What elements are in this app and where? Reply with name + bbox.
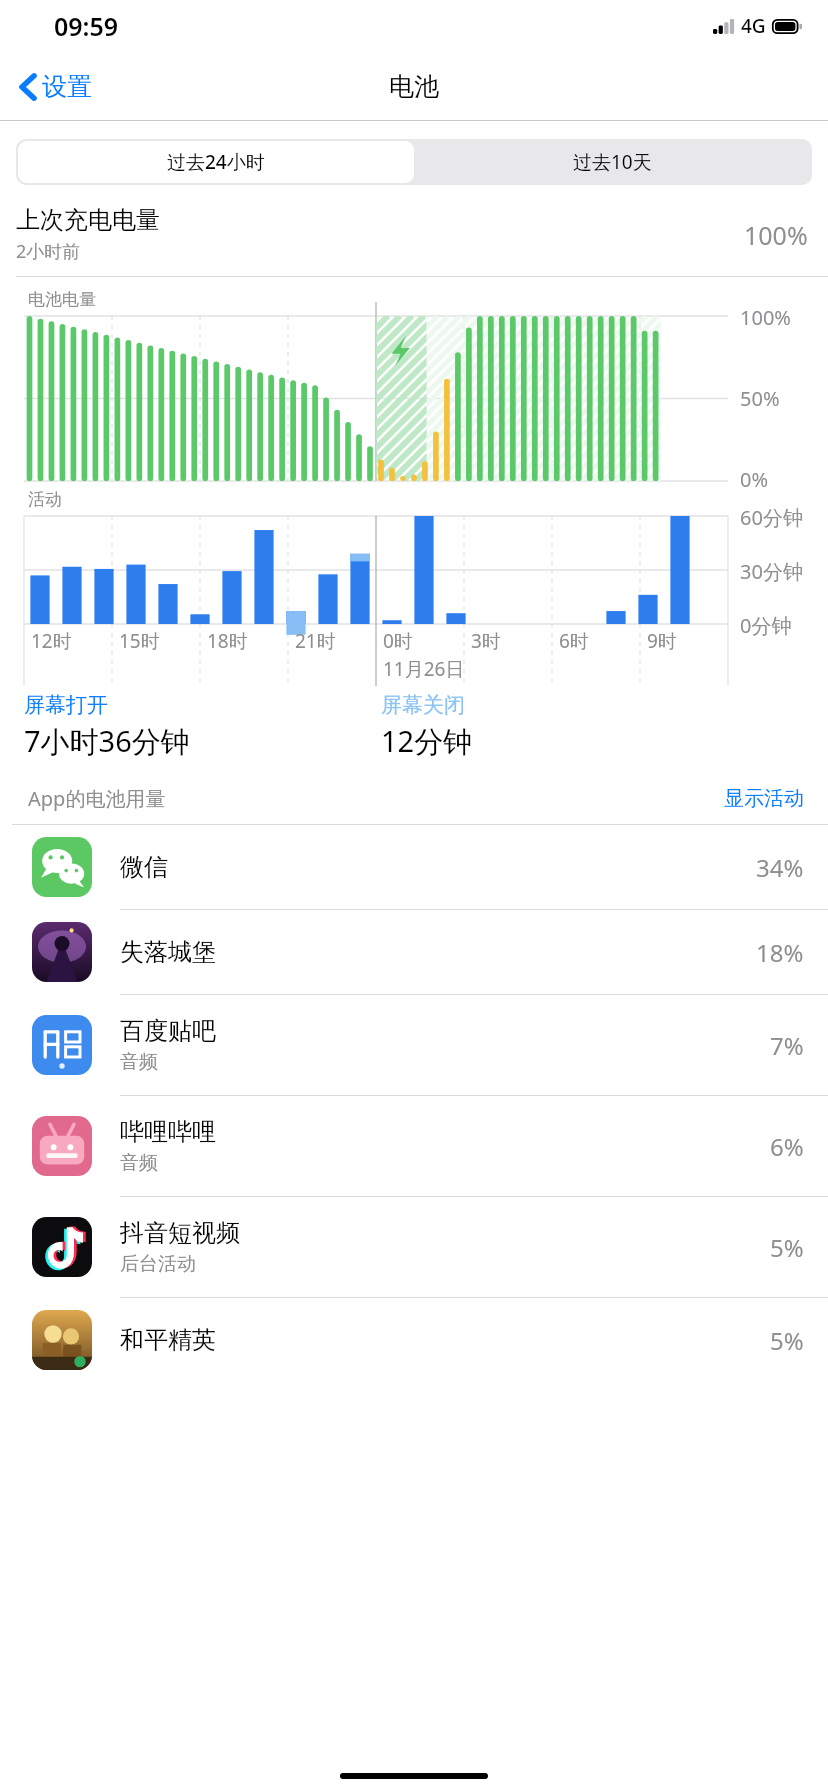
staticText: 活动 bbox=[28, 489, 62, 510]
staticText: 屏幕打开 bbox=[24, 692, 108, 718]
staticText: 0时 bbox=[383, 628, 413, 654]
button[interactable]: 和平精英 bbox=[0, 1298, 828, 1382]
staticText: 2小时前 bbox=[16, 239, 81, 264]
staticText: 5% bbox=[770, 1231, 804, 1264]
button[interactable]: 抖音短视频 bbox=[0, 1197, 828, 1297]
button[interactable]: Back bbox=[0, 61, 108, 112]
staticText: 09:59 bbox=[54, 9, 119, 43]
staticText: 9时 bbox=[647, 628, 677, 654]
staticText: 电池 bbox=[389, 71, 439, 102]
staticText: 100% bbox=[744, 218, 808, 252]
staticText: 0% bbox=[740, 466, 769, 493]
staticText: 12分钟 bbox=[381, 721, 473, 761]
staticText: 5% bbox=[770, 1324, 804, 1357]
staticText: 哔哩哔哩 bbox=[120, 1117, 216, 1147]
other: Back bbox=[20, 73, 36, 101]
staticText: 3时 bbox=[471, 628, 501, 654]
staticText: 微信 bbox=[120, 852, 168, 882]
staticText: 7小时36分钟 bbox=[24, 721, 190, 761]
staticText: 6时 bbox=[559, 628, 589, 654]
staticText: 60分钟 bbox=[740, 504, 803, 531]
button[interactable]: 过去24小时 bbox=[18, 141, 414, 183]
staticText: 显示活动 bbox=[724, 786, 804, 811]
staticText: 18% bbox=[756, 936, 804, 969]
staticText: 12时 bbox=[31, 628, 72, 654]
staticText: App的电池用量 bbox=[28, 785, 724, 812]
staticText: 30分钟 bbox=[740, 558, 803, 585]
staticText: 过去10天 bbox=[573, 149, 652, 175]
button[interactable]: 哔哩哔哩 bbox=[0, 1096, 828, 1196]
staticText: 0分钟 bbox=[740, 612, 792, 639]
button[interactable]: 失落城堡 bbox=[0, 910, 828, 994]
staticText: 电池电量 bbox=[28, 289, 96, 310]
staticText: 6% bbox=[770, 1130, 804, 1163]
staticText: 21时 bbox=[295, 628, 336, 654]
staticText: 设置 bbox=[42, 71, 92, 102]
staticText: 后台活动 bbox=[120, 1252, 196, 1276]
staticText: 百度贴吧 bbox=[120, 1016, 216, 1046]
staticText: 7% bbox=[770, 1029, 804, 1062]
staticText: 15时 bbox=[119, 628, 160, 654]
staticText: 50% bbox=[740, 385, 780, 412]
button[interactable]: 显示活动 bbox=[724, 786, 804, 811]
staticText: 上次充电电量 bbox=[16, 205, 160, 235]
staticText: 音频 bbox=[120, 1050, 158, 1074]
staticText: 18时 bbox=[207, 628, 248, 654]
staticText: 音频 bbox=[120, 1151, 158, 1175]
button[interactable]: 百度贴吧 bbox=[0, 995, 828, 1095]
staticText: 34% bbox=[756, 851, 804, 884]
staticText: 过去24小时 bbox=[167, 149, 265, 175]
staticText: 4G bbox=[741, 13, 766, 39]
staticText: 和平精英 bbox=[120, 1325, 216, 1355]
staticText: 100% bbox=[740, 304, 791, 331]
staticText: 失落城堡 bbox=[120, 937, 216, 967]
button[interactable]: 微信 bbox=[0, 825, 828, 909]
staticText: 屏幕关闭 bbox=[381, 692, 465, 718]
staticText: 11月26日 bbox=[383, 656, 465, 682]
button[interactable]: 过去10天 bbox=[414, 141, 810, 183]
staticText: 抖音短视频 bbox=[120, 1218, 240, 1248]
